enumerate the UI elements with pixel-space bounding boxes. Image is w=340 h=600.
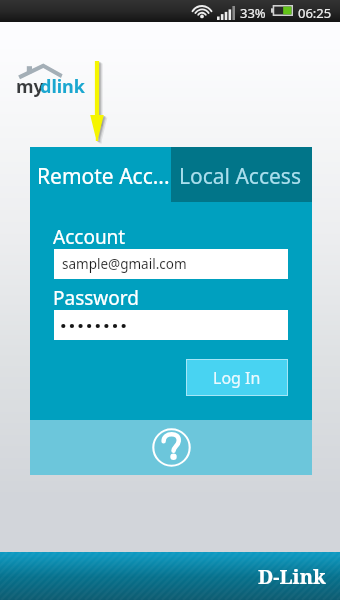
button[interactable]: sample@gmail.com — [54, 249, 288, 279]
staticText: Local Access — [179, 162, 301, 191]
staticText: 33% — [240, 4, 266, 22]
staticText: dlink — [40, 74, 85, 99]
staticText: 06:25 — [298, 4, 332, 22]
button[interactable]: Remote Acc... — [30, 147, 171, 202]
staticText: Password — [53, 285, 139, 311]
button[interactable]: Help — [30, 420, 312, 475]
staticText: Account — [53, 224, 126, 250]
button[interactable] — [54, 310, 288, 340]
staticText: my — [16, 74, 44, 99]
button[interactable]: Local Access — [171, 147, 312, 202]
staticText: sample@gmail.com — [62, 255, 187, 273]
staticText: D-Link — [258, 563, 326, 590]
staticText: Remote Acc... — [37, 162, 170, 191]
button[interactable]: Log In — [186, 359, 288, 396]
staticText: Log In — [213, 367, 261, 389]
